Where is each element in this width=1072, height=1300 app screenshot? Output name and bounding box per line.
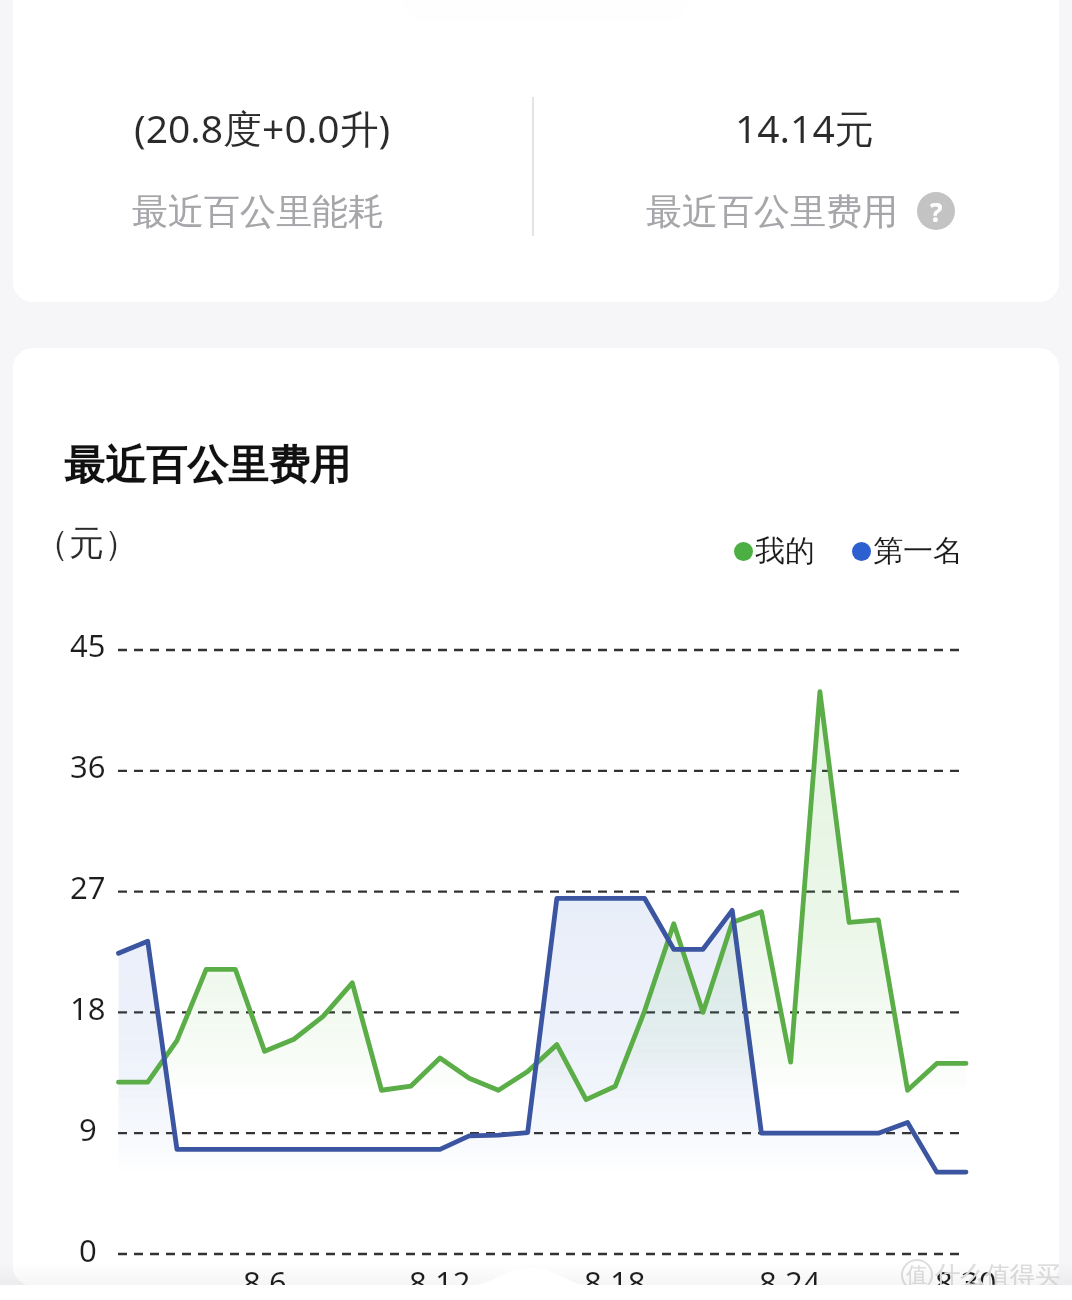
staticText: 27 — [70, 866, 106, 908]
staticText: 我的 — [755, 532, 815, 570]
staticText: 8.18 — [584, 1261, 646, 1300]
staticText: 第一名 — [873, 532, 963, 570]
staticText: 36 — [70, 745, 106, 787]
staticText: 最近百公里费用 — [64, 440, 351, 492]
staticText: 最近百公里能耗 — [132, 189, 384, 234]
button[interactable]: (20.8度+0.0升) — [20, 80, 525, 250]
button[interactable]: 14.14元 — [541, 80, 1046, 250]
button[interactable]: 最近百公里费用 — [64, 440, 351, 492]
button[interactable]: Help — [917, 192, 955, 230]
staticText: 8.6 — [243, 1261, 287, 1300]
staticText: （元） — [34, 521, 139, 565]
button[interactable]: 我的 — [734, 532, 815, 570]
staticText: ? — [930, 194, 943, 229]
button[interactable]: 第一名 — [852, 532, 963, 570]
staticText: 14.14元 — [735, 101, 874, 154]
staticText: 18 — [70, 987, 106, 1029]
staticText: 最近百公里费用 — [646, 189, 898, 234]
staticText: 8.12 — [409, 1261, 471, 1300]
staticText: 0 — [79, 1229, 97, 1271]
staticText: 8.24 — [759, 1261, 821, 1300]
staticText: 值 — [906, 1262, 927, 1288]
staticText: 9 — [79, 1108, 97, 1150]
staticText: 45 — [70, 624, 106, 666]
staticText: 8.30 — [935, 1261, 997, 1300]
staticText: (20.8度+0.0升) — [134, 101, 391, 154]
staticText: 什么值得买 — [935, 1260, 1060, 1291]
